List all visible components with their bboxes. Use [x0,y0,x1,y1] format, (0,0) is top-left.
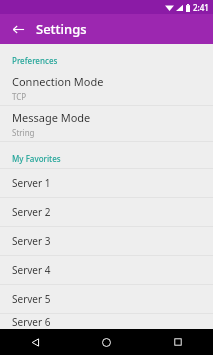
button[interactable]: Server 2 [0,198,213,226]
button[interactable]: Server 5 [0,285,213,313]
staticText: 2:41 [193,2,209,13]
button[interactable]: Back [0,329,71,355]
staticText: Preferences [12,55,58,66]
staticText: String [12,127,35,138]
staticText: Server 4 [12,263,51,277]
button[interactable]: Server 1 [0,169,213,197]
staticText: Message Mode [12,110,91,125]
button[interactable]: Server 6 [0,314,213,329]
button[interactable]: Recent apps [142,329,213,355]
staticText: Server 2 [12,205,51,219]
staticText: Settings [36,20,87,38]
button[interactable]: Back [0,14,36,44]
staticText: Connection Mode [12,74,104,89]
staticText: Server 1 [12,176,51,190]
staticText: TCP [12,91,27,102]
staticText: Server 5 [12,292,51,306]
staticText: Server 3 [12,234,51,248]
staticText: My Favorites [12,153,61,164]
button[interactable]: Server 3 [0,227,213,255]
staticText: Server 6 [12,315,51,329]
button[interactable]: Server 4 [0,256,213,284]
button[interactable]: Message Mode [0,106,213,141]
button[interactable]: Connection Mode [0,70,213,105]
button[interactable]: Home [71,329,142,355]
